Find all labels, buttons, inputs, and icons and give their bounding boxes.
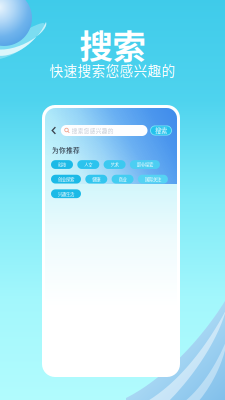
button[interactable]: 商业 <box>112 175 134 184</box>
button[interactable]: 创业探索 <box>51 175 81 184</box>
staticText: 商业 <box>119 176 127 182</box>
staticText: 搜索您感兴趣的 <box>72 126 114 134</box>
staticText: 职业探索 <box>137 161 153 168</box>
staticText: 快速搜索您感兴趣的 <box>49 60 175 80</box>
button[interactable]: 健康 <box>85 175 107 184</box>
button[interactable]: 搜索您感兴趣的 <box>61 125 147 136</box>
button[interactable]: 搜索 <box>150 126 171 135</box>
staticText: 人文 <box>84 161 92 168</box>
button[interactable]: Back <box>50 126 58 135</box>
button[interactable]: 人文 <box>77 160 99 169</box>
staticText: 为你推荐 <box>52 145 80 155</box>
button[interactable]: 职业探索 <box>130 160 160 169</box>
staticText: 搜索 <box>155 126 167 135</box>
staticText: 国际关注 <box>145 176 161 182</box>
button[interactable]: 科技 <box>51 160 73 169</box>
staticText: 艺术 <box>111 161 119 168</box>
button[interactable]: 兴趣生活 <box>51 189 81 198</box>
staticText: 健康 <box>92 176 100 182</box>
staticText: 创业探索 <box>58 176 74 182</box>
button[interactable]: 国际关注 <box>138 175 168 184</box>
staticText: 搜索 <box>79 20 145 68</box>
button[interactable]: 艺术 <box>104 160 126 169</box>
staticText: 科技 <box>58 161 66 168</box>
staticText: 兴趣生活 <box>58 191 74 197</box>
